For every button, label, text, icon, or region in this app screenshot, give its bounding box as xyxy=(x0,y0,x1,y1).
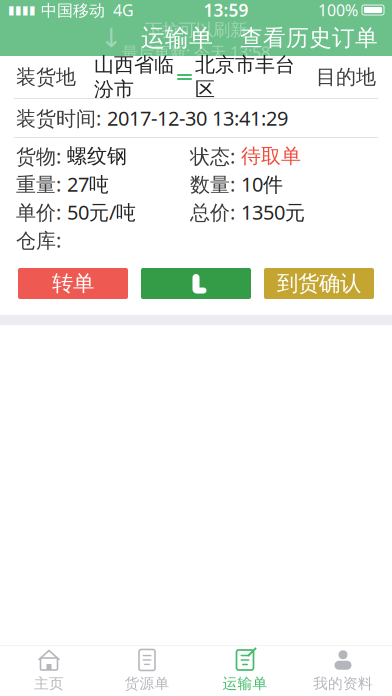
staticText: 到货确认 xyxy=(277,270,361,297)
staticText: 目的地 xyxy=(316,65,376,89)
staticText: 数量: xyxy=(190,171,235,197)
staticText: 北京市丰台区 xyxy=(195,52,295,101)
staticText: 待取单 xyxy=(241,144,301,168)
button[interactable]: 我的资料 xyxy=(294,643,392,696)
staticText: 装货时间: xyxy=(16,105,101,131)
staticText: 转单 xyxy=(52,270,94,297)
staticText: 货源单 xyxy=(124,674,169,692)
staticText: 仓库: xyxy=(16,227,61,253)
button[interactable]: 主页 xyxy=(0,643,98,696)
staticText: 状态: xyxy=(190,143,235,169)
staticText: 重量: xyxy=(16,171,61,197)
staticText: 中国移动 4G xyxy=(36,0,134,21)
staticText: 运输单 xyxy=(222,674,267,692)
staticText: 2017-12-30 13:41:29 xyxy=(107,105,288,131)
staticText: 货物: xyxy=(16,143,61,169)
staticText: 运输单 xyxy=(141,23,213,53)
button[interactable]: 到货确认 xyxy=(264,268,374,299)
staticText: 13:59 xyxy=(203,0,248,21)
staticText: 山西省临汾市 xyxy=(94,52,174,101)
staticText: 总价: xyxy=(190,199,235,225)
staticText: ▮▮▮▮ xyxy=(8,3,36,17)
staticText: 1350元 xyxy=(241,199,305,225)
staticText: 27吨 xyxy=(67,171,109,197)
staticText: 100% xyxy=(318,0,358,21)
button[interactable]: 运输单 xyxy=(196,643,294,696)
staticText: 我的资料 xyxy=(313,674,373,692)
staticText: 50元/吨 xyxy=(67,199,136,225)
staticText: ↓ xyxy=(100,23,122,53)
staticText: 主页 xyxy=(34,674,64,692)
staticText: 单价: xyxy=(16,199,61,225)
button[interactable]: 转单 xyxy=(18,268,128,299)
staticText: 装货地 xyxy=(16,65,76,89)
staticText: 螺纹钢 xyxy=(67,144,127,168)
button[interactable]: 货源单 xyxy=(98,643,196,696)
staticText: 最后更新: 今天 13:58 xyxy=(122,41,270,63)
staticText: 查看历史订单 xyxy=(240,24,378,52)
staticText: 下拉可以刷新 xyxy=(145,19,247,40)
staticText: 10件 xyxy=(241,171,283,197)
button[interactable]: 拨打电话 xyxy=(141,268,251,299)
button[interactable]: 查看历史订单 xyxy=(232,18,386,58)
